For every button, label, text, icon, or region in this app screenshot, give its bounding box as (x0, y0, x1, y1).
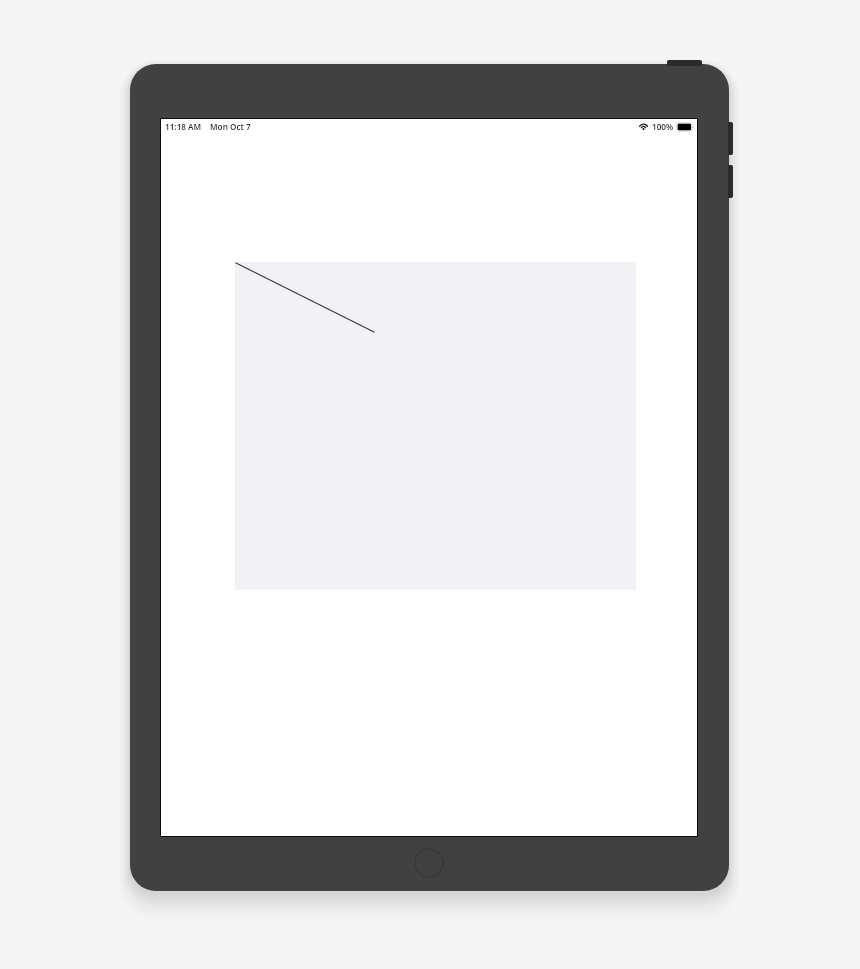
button[interactable]: Drawing canvas (235, 262, 636, 590)
button[interactable]: Volume down (728, 165, 733, 198)
button[interactable]: Power (667, 60, 702, 66)
other: Battery full (676, 122, 695, 132)
staticText: 11:18 AM (165, 121, 202, 132)
staticText: Mon Oct 7 (210, 121, 251, 132)
button[interactable]: Volume up (728, 122, 733, 155)
other: Wi-Fi connected (638, 123, 649, 130)
staticText: 100% (652, 121, 674, 132)
